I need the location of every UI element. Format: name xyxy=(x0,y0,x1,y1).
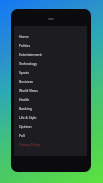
button[interactable]: Poll xyxy=(14,131,87,140)
button[interactable]: Health xyxy=(14,95,87,104)
staticText: Life & Style xyxy=(19,115,37,120)
staticText: Opinion xyxy=(19,124,32,129)
staticText: Entertainment xyxy=(19,52,42,57)
staticText: Sports xyxy=(19,70,30,75)
staticText: Poll xyxy=(19,133,25,138)
button[interactable]: Technology xyxy=(14,59,87,68)
staticText: Politics xyxy=(19,43,31,48)
button[interactable]: Politics xyxy=(14,41,87,50)
staticText: Technology xyxy=(19,61,37,66)
button[interactable]: Sports xyxy=(14,68,87,77)
staticText: Health xyxy=(19,97,30,102)
staticText: Privacy Policy xyxy=(19,142,41,147)
button[interactable]: Privacy Policy xyxy=(14,140,87,149)
button[interactable]: Opinion xyxy=(14,122,87,131)
staticText: Business xyxy=(19,79,33,84)
staticText: World News xyxy=(19,88,38,93)
button[interactable]: Home xyxy=(14,32,87,41)
button[interactable]: Life & Style xyxy=(14,113,87,122)
button[interactable]: World News xyxy=(14,86,87,95)
button[interactable]: Banking xyxy=(14,104,87,113)
staticText: Home xyxy=(19,34,29,39)
button[interactable]: Entertainment xyxy=(14,50,87,59)
staticText: Banking xyxy=(19,106,32,111)
button[interactable]: Business xyxy=(14,77,87,86)
